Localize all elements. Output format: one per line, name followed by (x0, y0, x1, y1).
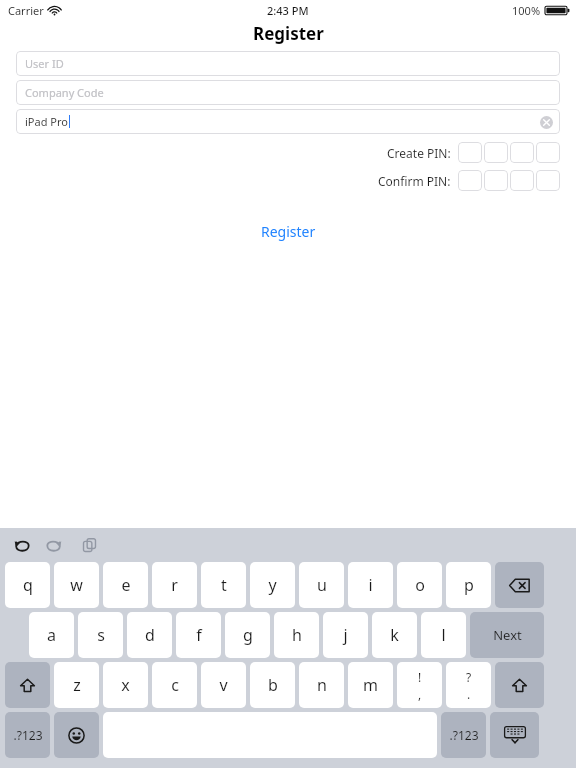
button[interactable]: .?123 (441, 712, 486, 758)
button[interactable]: j (323, 612, 368, 658)
button[interactable]: r (152, 562, 197, 608)
staticText: b (268, 674, 278, 696)
staticText: .?123 (13, 727, 43, 743)
button[interactable]: p (446, 562, 491, 608)
button[interactable]: Create PIN: digit 2 (484, 142, 508, 163)
staticText: .?123 (449, 727, 479, 743)
staticText: e (121, 574, 131, 596)
button[interactable]: User ID (16, 51, 560, 76)
staticText: ? (466, 669, 472, 685)
button[interactable]: c (152, 662, 197, 708)
button[interactable]: Shift (5, 662, 50, 708)
button[interactable]: Hide keyboard (490, 712, 539, 758)
staticText: r (171, 574, 178, 596)
button[interactable]: Next (470, 612, 544, 658)
staticText: User ID (25, 56, 64, 71)
staticText: Register (261, 222, 316, 241)
button[interactable]: m (348, 662, 393, 708)
button[interactable]: Backspace (495, 562, 544, 608)
button[interactable]: .?123 (5, 712, 50, 758)
button[interactable]: Create PIN: digit 4 (536, 142, 560, 163)
button[interactable]: u (299, 562, 344, 608)
button[interactable]: Paste (75, 531, 103, 559)
button[interactable]: x (103, 662, 148, 708)
button[interactable]: ? (446, 662, 491, 708)
button[interactable]: w (54, 562, 99, 608)
button[interactable]: y (250, 562, 295, 608)
staticText: a (47, 624, 56, 646)
staticText: c (171, 674, 179, 696)
button[interactable]: Clear text (538, 114, 554, 130)
staticText: . (467, 686, 471, 702)
staticText: m (363, 674, 378, 696)
staticText: t (221, 574, 227, 596)
button[interactable]: n (299, 662, 344, 708)
staticText: d (145, 624, 155, 646)
button[interactable]: v (201, 662, 246, 708)
button[interactable]: Create PIN: digit 1 (458, 142, 482, 163)
button[interactable]: Confirm PIN: digit 2 (484, 170, 508, 191)
staticText: Confirm PIN: (378, 173, 451, 189)
staticText: i (368, 574, 373, 596)
button[interactable]: l (421, 612, 466, 658)
button[interactable]: Confirm PIN: digit 3 (510, 170, 534, 191)
staticText: j (343, 624, 348, 646)
button[interactable]: i (348, 562, 393, 608)
button[interactable]: iPad Pro (16, 109, 560, 134)
button[interactable]: s (78, 612, 123, 658)
button[interactable]: Confirm PIN: digit 1 (458, 170, 482, 191)
button[interactable]: g (225, 612, 270, 658)
staticText: z (73, 674, 81, 696)
staticText: Create PIN: (387, 145, 451, 161)
staticText: y (268, 574, 277, 596)
button[interactable]: a (29, 612, 74, 658)
staticText: Company Code (25, 85, 104, 100)
button[interactable]: Emoji (54, 712, 99, 758)
staticText: x (121, 674, 130, 696)
staticText: w (70, 574, 83, 596)
button[interactable]: Create PIN: digit 3 (510, 142, 534, 163)
button[interactable]: ! (397, 662, 442, 708)
staticText: Next (493, 626, 522, 644)
staticText: 100% (512, 3, 541, 18)
staticText: q (23, 574, 33, 596)
staticText: 2:43 PM (267, 3, 309, 18)
staticText: p (464, 574, 474, 596)
button[interactable]: t (201, 562, 246, 608)
button[interactable]: h (274, 612, 319, 658)
staticText: Carrier (8, 3, 44, 18)
staticText: h (292, 624, 302, 646)
staticText: g (243, 624, 253, 646)
button[interactable]: Company Code (16, 80, 560, 105)
staticText: n (317, 674, 327, 696)
staticText: iPad Pro (25, 114, 68, 129)
button[interactable]: Undo (7, 531, 35, 559)
staticText: v (219, 674, 228, 696)
button[interactable]: b (250, 662, 295, 708)
button[interactable]: z (54, 662, 99, 708)
staticText: o (415, 574, 425, 596)
button[interactable]: Confirm PIN: digit 4 (536, 170, 560, 191)
button[interactable]: Shift (495, 662, 544, 708)
button[interactable]: f (176, 612, 221, 658)
button[interactable]: o (397, 562, 442, 608)
staticText: f (196, 624, 202, 646)
button[interactable]: d (127, 612, 172, 658)
staticText: Register (253, 22, 324, 45)
button[interactable]: Redo (41, 531, 69, 559)
staticText: k (390, 624, 399, 646)
staticText: s (97, 624, 105, 646)
staticText: ! (418, 669, 422, 685)
staticText: l (441, 624, 446, 646)
staticText: , (418, 686, 422, 702)
button[interactable]: Register (251, 219, 326, 244)
button[interactable]: q (5, 562, 50, 608)
staticText: u (317, 574, 327, 596)
button[interactable]: k (372, 612, 417, 658)
button[interactable]: e (103, 562, 148, 608)
